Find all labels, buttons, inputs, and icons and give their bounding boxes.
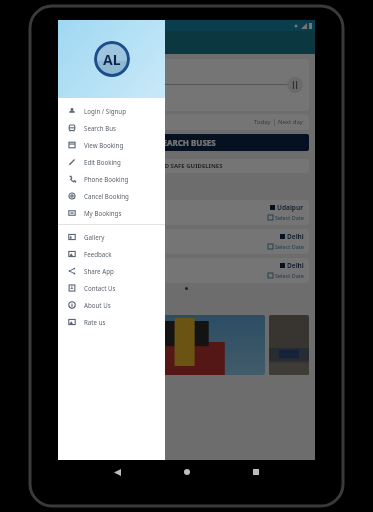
staticText: Today <box>254 118 271 126</box>
staticText: Select Date <box>275 243 304 250</box>
staticText: Account <box>112 475 133 482</box>
staticText: Udaipur <box>277 203 304 212</box>
button[interactable]: View Booking <box>58 136 165 153</box>
staticText: Gallery <box>84 233 105 241</box>
button[interactable]: COVID SAFE GUIDELINES <box>64 159 309 173</box>
staticText: Popular routes <box>64 181 146 196</box>
staticText: Delhi <box>287 232 304 241</box>
staticText: Rate us <box>84 318 106 326</box>
button[interactable]: Gallery <box>58 228 165 245</box>
button[interactable]: SEARCH BUSES <box>64 134 309 151</box>
button[interactable]: Search Bus <box>58 119 165 136</box>
button[interactable]: Swap source and destination <box>287 77 303 93</box>
staticText: Search Bus <box>84 124 117 132</box>
button[interactable]: Share App <box>58 262 165 279</box>
button[interactable]: Today <box>254 118 271 126</box>
button[interactable]: Feedback <box>58 245 165 262</box>
staticText: AL <box>103 50 121 69</box>
staticText: Contact Us <box>84 284 116 292</box>
button[interactable]: Back <box>107 462 127 482</box>
button[interactable]: Account <box>58 462 186 484</box>
button[interactable]: Recent apps <box>246 462 266 482</box>
staticText: Select Date <box>275 272 304 279</box>
staticText: Share App <box>84 267 114 275</box>
staticText: Select Date <box>275 214 304 221</box>
staticText: My Bookings <box>84 209 122 217</box>
button[interactable]: Contact Us <box>58 279 165 296</box>
staticText: Next day <box>278 118 303 126</box>
staticText: Delhi <box>287 261 304 270</box>
button[interactable]: Feedback <box>186 462 315 484</box>
staticText: COVID SAFE GUIDELINES <box>150 162 223 170</box>
button[interactable]: Edit Booking <box>58 153 165 170</box>
staticText: Login / Signup <box>84 107 126 115</box>
staticText: Phone Booking <box>84 175 129 183</box>
button[interactable]: About Us <box>58 296 165 313</box>
button[interactable]: Login / Signup <box>58 102 165 119</box>
button[interactable]: Delhi <box>64 258 309 283</box>
button[interactable]: Next day <box>278 118 303 126</box>
staticText: Edit Booking <box>84 158 121 166</box>
staticText: View Booking <box>84 141 124 149</box>
button[interactable]: Delhi <box>64 229 309 254</box>
button[interactable]: My Bookings <box>58 204 165 221</box>
button[interactable]: Phone Booking <box>58 170 165 187</box>
staticText: Gallery <box>64 296 103 311</box>
button[interactable]: Udaipur <box>64 200 309 225</box>
button[interactable]: Rate us <box>58 313 165 330</box>
staticText: Cancel Booking <box>84 192 129 200</box>
button[interactable]: Cancel Booking <box>58 187 165 204</box>
staticText: Feedback <box>84 250 112 258</box>
button[interactable]: Home <box>177 462 197 482</box>
staticText: About Us <box>84 301 111 309</box>
staticText: SEARCH BUSES <box>158 137 216 148</box>
